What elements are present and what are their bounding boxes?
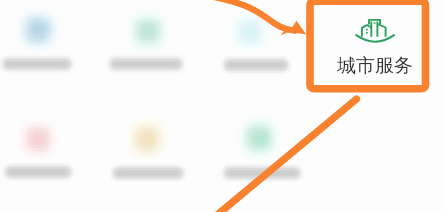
staticText: 城市服务 — [337, 54, 413, 78]
